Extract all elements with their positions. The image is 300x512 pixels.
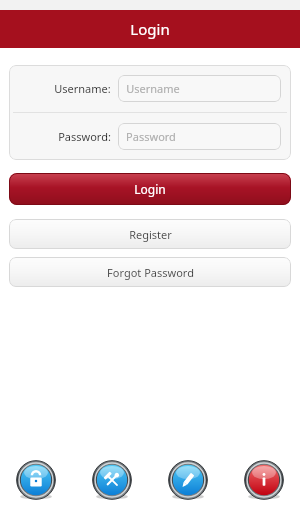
staticText: Forgot Password: [107, 265, 194, 280]
staticText: Password:: [58, 129, 111, 144]
button[interactable]: Tools: [90, 458, 134, 502]
button[interactable]: Forgot Password: [9, 257, 291, 287]
button[interactable]: Login: [9, 173, 291, 205]
button[interactable]: Info: [242, 458, 286, 502]
button[interactable]: Username: [118, 75, 281, 102]
button[interactable]: Register: [9, 219, 291, 249]
staticText: Login: [130, 19, 170, 39]
button[interactable]: Edit: [166, 458, 210, 502]
staticText: Username: [126, 81, 180, 96]
staticText: Username:: [54, 81, 111, 96]
button[interactable]: Security: [14, 458, 58, 502]
button[interactable]: Password: [118, 123, 281, 150]
staticText: Register: [129, 227, 172, 242]
staticText: Login: [134, 181, 166, 197]
staticText: Password: [126, 129, 176, 144]
